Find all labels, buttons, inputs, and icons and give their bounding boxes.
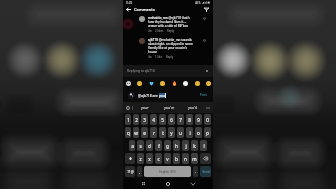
button[interactable]: Back xyxy=(189,180,196,187)
button[interactable]: Emoji reaction xyxy=(125,80,131,86)
button[interactable]: Home xyxy=(164,180,172,188)
button[interactable]: 2 xyxy=(133,114,139,125)
button[interactable]: your xyxy=(133,105,157,110)
button[interactable]: a xyxy=(129,140,135,151)
button[interactable]: English (US) xyxy=(144,166,191,177)
button[interactable]: 0 xyxy=(204,114,211,125)
button[interactable]: Emoji reaction xyxy=(159,80,165,86)
staticText: n xyxy=(184,156,187,162)
staticText: i xyxy=(189,130,191,136)
button[interactable]: m xyxy=(191,153,198,164)
button[interactable]: l xyxy=(200,140,207,151)
staticText: Reply xyxy=(167,29,175,33)
button[interactable]: Emoji reaction xyxy=(194,80,200,86)
button[interactable]: d xyxy=(146,140,153,151)
staticText: 0 xyxy=(206,117,209,123)
button[interactable]: Cancel reply xyxy=(205,69,209,73)
staticText: t xyxy=(162,130,164,136)
button[interactable]: Back xyxy=(125,6,132,13)
button[interactable]: ?1@ xyxy=(125,166,135,177)
staticText: Reply xyxy=(166,55,174,59)
staticText: you're xyxy=(164,105,175,110)
staticText: e xyxy=(143,130,146,136)
button[interactable]: x xyxy=(146,153,153,164)
staticText: Replying to ajb718 xyxy=(127,69,155,73)
staticText: , xyxy=(139,170,140,174)
staticText: @ajb718 are xyxy=(138,93,159,98)
button[interactable]: e xyxy=(141,127,148,138)
button[interactable]: Filter comments xyxy=(203,6,210,13)
staticText: Post xyxy=(200,93,207,97)
staticText: p xyxy=(206,130,209,136)
button[interactable]: you're xyxy=(157,105,181,110)
button[interactable]: you'd xyxy=(181,105,205,110)
button[interactable]: q xyxy=(125,127,131,138)
staticText: your xyxy=(141,105,149,110)
button[interactable]: More suggestions xyxy=(205,105,211,111)
button[interactable]: f xyxy=(155,140,162,151)
staticText: 2 xyxy=(135,117,138,123)
button[interactable]: 3 xyxy=(141,114,148,125)
button[interactable]: Like comment xyxy=(202,38,207,43)
button[interactable]: p xyxy=(204,127,211,138)
button[interactable]: 6 xyxy=(168,114,175,125)
staticText: ajb718 @mshattie_mo sounds about right. … xyxy=(148,38,193,54)
button[interactable]: o xyxy=(195,127,202,138)
staticText: a xyxy=(131,143,134,149)
button[interactable]: , xyxy=(137,166,142,177)
staticText: you'd xyxy=(188,105,198,110)
staticText: mshattie_mo @ajb718 that's how thy husba… xyxy=(148,16,190,28)
button[interactable]: c xyxy=(155,153,162,164)
button[interactable]: Shift xyxy=(125,153,135,164)
button[interactable]: w xyxy=(133,127,139,138)
staticText: m xyxy=(192,156,197,162)
button[interactable]: 1 xyxy=(125,114,131,125)
button[interactable]: j xyxy=(182,140,189,151)
button[interactable]: Recent apps xyxy=(140,180,147,187)
button[interactable]: Send xyxy=(200,166,211,177)
button[interactable]: t xyxy=(159,127,166,138)
staticText: x xyxy=(148,156,151,162)
button[interactable]: . xyxy=(193,166,198,177)
button[interactable]: Backspace xyxy=(200,153,211,164)
staticText: w xyxy=(134,130,138,136)
staticText: 6 xyxy=(170,117,173,123)
staticText: d xyxy=(148,143,151,149)
staticText: 9:25 xyxy=(126,1,133,5)
button[interactable]: h xyxy=(173,140,180,151)
button[interactable]: 8 xyxy=(186,114,193,125)
button[interactable]: i xyxy=(186,127,193,138)
button[interactable]: Emoji reaction xyxy=(148,80,154,86)
button[interactable]: g xyxy=(164,140,171,151)
staticText: 1 like xyxy=(155,55,163,59)
button[interactable]: k xyxy=(191,140,198,151)
staticText: 1 xyxy=(127,117,130,123)
button[interactable]: Emoji reaction xyxy=(171,80,177,86)
staticText: k xyxy=(193,143,196,149)
button[interactable]: y xyxy=(168,127,175,138)
staticText: h xyxy=(175,143,178,149)
button[interactable]: Voice input xyxy=(125,105,131,111)
staticText: you xyxy=(159,93,165,98)
button[interactable]: 4 xyxy=(150,114,157,125)
staticText: j xyxy=(185,143,187,149)
staticText: 4w xyxy=(148,29,152,33)
staticText: ?1@ xyxy=(127,170,134,174)
button[interactable]: Like comment xyxy=(202,16,207,21)
button[interactable]: u xyxy=(177,127,184,138)
staticText: f xyxy=(158,143,160,149)
button[interactable]: n xyxy=(182,153,189,164)
button[interactable]: Emoji reaction xyxy=(205,80,211,86)
button[interactable]: Emoji reaction xyxy=(182,80,188,86)
button[interactable]: 9 xyxy=(195,114,202,125)
button[interactable]: b xyxy=(173,153,180,164)
button[interactable]: 7 xyxy=(177,114,184,125)
button[interactable]: v xyxy=(164,153,171,164)
button[interactable]: s xyxy=(137,140,144,151)
button[interactable]: Emoji reaction xyxy=(136,80,142,86)
staticText: 2 likes xyxy=(155,29,164,33)
button[interactable]: z xyxy=(137,153,144,164)
button[interactable]: r xyxy=(150,127,157,138)
button[interactable]: Post xyxy=(199,93,208,97)
button[interactable]: 5 xyxy=(159,114,166,125)
